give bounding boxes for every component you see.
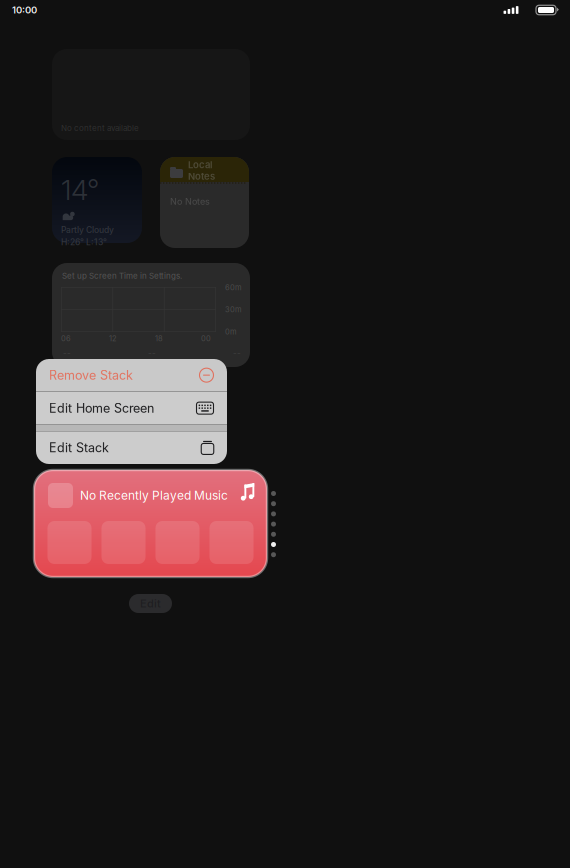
staticText: 0m [225,327,237,336]
staticText: H:26° L:13° [61,237,107,247]
staticText: No Notes [170,196,210,207]
button[interactable]: Edit Home Screen [36,392,227,424]
staticText: -- [233,348,241,358]
button[interactable]: Remove Stack [36,359,227,391]
staticText: 60m [225,283,242,292]
staticText: 10:00 [12,4,37,16]
staticText: 18 [155,334,163,343]
staticText: -- [63,348,71,358]
button[interactable]: No Recently Played Music [34,470,267,577]
staticText: Remove Stack [49,368,133,383]
staticText: No content available [61,123,139,133]
staticText: Partly Cloudy [61,225,114,235]
staticText: 06 [61,334,71,343]
staticText: Local Notes [188,159,215,182]
staticText: 12 [109,334,117,343]
staticText: 30m [225,305,242,314]
staticText: Set up Screen Time in Settings. [62,271,182,281]
staticText: Edit Home Screen [49,401,154,416]
staticText: -- [148,348,156,358]
button[interactable]: Edit [129,594,172,613]
button[interactable]: Edit Stack [36,431,227,464]
staticText: Edit Stack [49,440,109,455]
staticText: 14° [61,173,99,207]
staticText: Edit [140,597,161,610]
staticText: 00 [201,334,211,343]
staticText: No Recently Played Music [80,488,228,502]
